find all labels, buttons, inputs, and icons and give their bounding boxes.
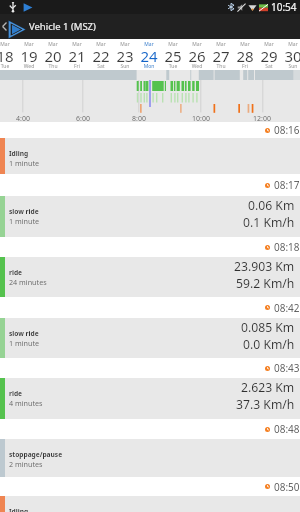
staticText: Mar xyxy=(113,41,137,48)
staticText: 0.1 Km/h xyxy=(243,214,295,231)
button[interactable]: Mar xyxy=(233,39,257,70)
staticText: Fri xyxy=(233,63,257,70)
button[interactable]: Mar xyxy=(0,39,17,70)
staticText: Sun xyxy=(281,63,300,70)
button[interactable]: Mar xyxy=(257,39,281,70)
staticText: 20 xyxy=(41,46,65,66)
button[interactable]: 08:17 xyxy=(0,174,300,237)
staticText: 0.085 Km xyxy=(241,319,295,336)
staticText: 8:00 xyxy=(125,114,153,124)
staticText: Sat xyxy=(89,63,113,70)
staticText: 08:43 xyxy=(274,361,300,375)
staticText: Thu xyxy=(41,63,65,70)
button[interactable]: Mar xyxy=(113,39,137,70)
staticText: Mar xyxy=(233,41,257,48)
staticText: 1 minute xyxy=(9,216,40,226)
button[interactable]: Mar xyxy=(209,39,233,70)
staticText: Mon xyxy=(137,63,161,70)
staticText: 0.0 Km/h xyxy=(243,336,295,353)
staticText: 08:50 xyxy=(274,480,300,494)
staticText: 19 xyxy=(17,46,41,66)
button[interactable]: 08:50 xyxy=(0,477,300,512)
staticText: 23 xyxy=(113,46,137,66)
staticText: 1 minute xyxy=(9,338,40,348)
staticText: 23.903 Km xyxy=(234,258,295,275)
staticText: 28 xyxy=(233,46,257,66)
staticText: Vehicle 1 (MSZ) xyxy=(29,20,96,33)
staticText: 08:17 xyxy=(274,178,300,192)
staticText: ride xyxy=(9,268,23,277)
staticText: Fri xyxy=(65,63,89,70)
staticText: Mar xyxy=(41,41,65,48)
staticText: 6:00 xyxy=(69,114,97,124)
button[interactable]: Mar xyxy=(65,39,89,70)
staticText: 2 minutes xyxy=(9,459,43,469)
staticText: 10:00 xyxy=(187,114,215,124)
staticText: 21 xyxy=(65,46,89,66)
staticText: Mar xyxy=(161,41,185,48)
staticText: Mar xyxy=(0,41,17,48)
staticText: Wed xyxy=(17,63,41,70)
button[interactable]: 08:48 xyxy=(0,419,300,477)
button[interactable]: Mar xyxy=(161,39,185,70)
staticText: Mar xyxy=(281,41,300,48)
staticText: Mar xyxy=(89,41,113,48)
staticText: 08:16 xyxy=(274,123,300,137)
staticText: 1 minute xyxy=(9,158,40,168)
button[interactable]: 08:42 xyxy=(0,297,300,358)
staticText: 4:00 xyxy=(9,114,37,124)
staticText: slow ride xyxy=(9,329,39,338)
staticText: 08:18 xyxy=(274,240,300,254)
staticText: 37.3 Km/h xyxy=(236,396,295,413)
button[interactable]: Back xyxy=(0,14,8,39)
staticText: stoppage/pause xyxy=(9,450,63,459)
button[interactable]: Mar xyxy=(17,39,41,70)
staticText: Tue xyxy=(161,63,185,70)
button[interactable]: Mar xyxy=(281,39,300,70)
staticText: 2.623 Km xyxy=(241,379,295,396)
staticText: Mar xyxy=(17,41,41,48)
staticText: Mar xyxy=(185,41,209,48)
button[interactable]: 08:16 xyxy=(0,122,300,174)
button[interactable]: 08:18 xyxy=(0,237,300,297)
staticText: Sat xyxy=(257,63,281,70)
button[interactable]: Mar xyxy=(185,39,209,70)
staticText: 08:48 xyxy=(274,422,300,436)
staticText: 10:54 xyxy=(271,0,297,14)
staticText: 08:42 xyxy=(274,301,300,315)
staticText: Mar xyxy=(257,41,281,48)
staticText: 22 xyxy=(89,46,113,66)
staticText: 30 xyxy=(281,46,300,66)
staticText: 59.2 Km/h xyxy=(236,275,295,292)
staticText: 27 xyxy=(209,46,233,66)
staticText: 26 xyxy=(185,46,209,66)
staticText: Mar xyxy=(209,41,233,48)
staticText: Wed xyxy=(185,63,209,70)
staticText: 24 xyxy=(137,46,161,66)
button[interactable]: Mar xyxy=(89,39,113,70)
staticText: ride xyxy=(9,389,23,398)
button[interactable]: 08:43 xyxy=(0,358,300,419)
staticText: 29 xyxy=(257,46,281,66)
staticText: 24 minutes xyxy=(9,277,47,287)
staticText: 12:00 xyxy=(248,114,276,124)
staticText: Sun xyxy=(113,63,137,70)
button[interactable]: Back xyxy=(0,14,300,39)
staticText: slow ride xyxy=(9,207,39,216)
button[interactable]: Mar xyxy=(41,39,65,70)
staticText: Idling xyxy=(9,507,29,512)
button[interactable]: Mar xyxy=(137,39,161,70)
staticText: Thu xyxy=(209,63,233,70)
staticText: 4 minutes xyxy=(9,398,43,408)
staticText: 0.06 Km xyxy=(248,197,295,214)
staticText: Mar xyxy=(137,41,161,48)
staticText: 18 xyxy=(0,46,17,66)
staticText: Idling xyxy=(9,149,29,158)
staticText: Tue xyxy=(0,63,17,70)
staticText: 25 xyxy=(161,46,185,66)
staticText: Mar xyxy=(65,41,89,48)
